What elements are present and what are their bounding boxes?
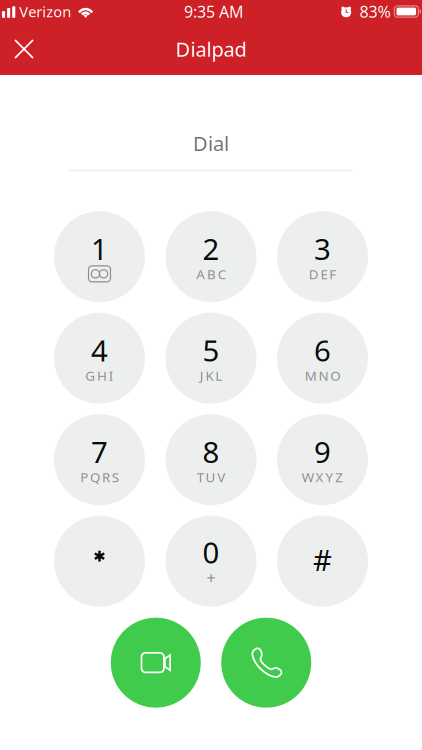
staticText: GHI xyxy=(85,367,114,384)
staticText: DEF xyxy=(309,265,336,283)
staticText: PQRS xyxy=(80,468,119,486)
button[interactable]: 1 xyxy=(54,211,145,302)
button[interactable]: 2 xyxy=(165,211,256,302)
staticText: 0 xyxy=(202,533,219,572)
staticText: Verizon xyxy=(19,2,71,21)
staticText: 5 xyxy=(202,331,219,370)
button[interactable]: Close xyxy=(2,27,46,71)
staticText: ABC xyxy=(196,265,226,283)
staticText: 7 xyxy=(91,432,108,471)
button[interactable]: 9 xyxy=(277,414,368,505)
staticText: MNO xyxy=(305,367,340,384)
button[interactable]: 4 xyxy=(54,313,145,404)
button[interactable]: 5 xyxy=(165,313,256,404)
staticText: 9:35 AM xyxy=(184,1,244,22)
staticText: WXYZ xyxy=(302,468,343,486)
staticText: Dial xyxy=(193,130,229,157)
staticText: Dialpad xyxy=(175,36,246,62)
staticText: 8 xyxy=(202,432,219,471)
staticText: 6 xyxy=(314,331,331,370)
button[interactable]: # xyxy=(277,516,368,607)
staticText: 1 xyxy=(91,229,108,268)
staticText: 2 xyxy=(202,229,219,268)
button[interactable]: 0 xyxy=(165,516,256,607)
button[interactable]: 8 xyxy=(165,414,256,505)
button[interactable]: Call xyxy=(221,618,311,708)
staticText: TUV xyxy=(197,468,225,486)
button[interactable] xyxy=(54,516,145,607)
button[interactable]: 7 xyxy=(54,414,145,505)
staticText: # xyxy=(313,540,332,579)
staticText: 3 xyxy=(314,229,331,268)
staticText: + xyxy=(206,567,215,589)
button[interactable]: Video call xyxy=(111,618,201,708)
staticText: 9 xyxy=(314,432,331,471)
button[interactable]: 3 xyxy=(277,211,368,302)
button[interactable]: 6 xyxy=(277,313,368,404)
staticText: JKL xyxy=(200,367,222,384)
staticText: 4 xyxy=(91,331,108,370)
staticText: 83% xyxy=(359,1,390,22)
